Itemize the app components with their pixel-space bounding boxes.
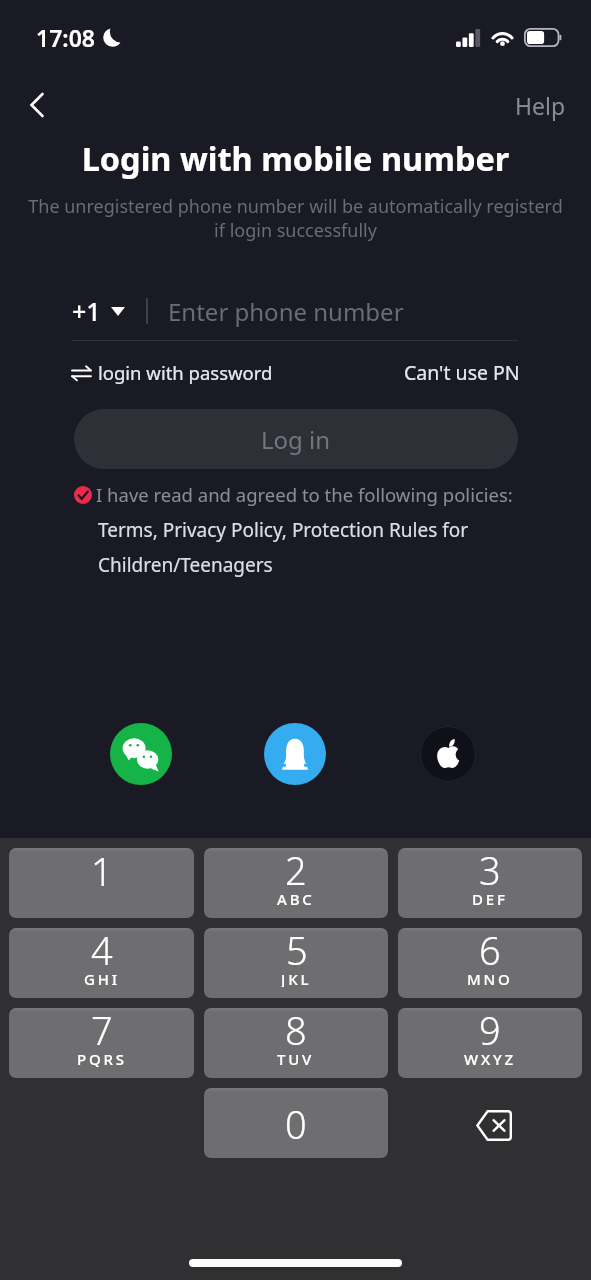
button[interactable]: +1 [72,294,125,328]
staticText: 3 [479,848,501,896]
button[interactable]: 1 [9,848,194,918]
staticText: 5 [286,928,308,976]
button[interactable]: Agree to policies checkbox [74,486,92,504]
button[interactable]: 0 [204,1088,388,1158]
staticText: MNO [467,969,513,987]
staticText: 17:08 [36,22,95,53]
staticText: 6 [479,928,501,976]
button[interactable]: Terms, Privacy Policy, Protection Rules … [98,517,491,578]
button[interactable]: login with password [72,360,273,385]
button[interactable]: 9 [398,1008,582,1078]
staticText: login with password [98,360,273,385]
staticText: JKL [281,969,312,987]
staticText: I have read and agreed to the following … [96,482,513,507]
button[interactable]: Log in [74,409,518,469]
staticText: +1 [72,294,101,328]
staticText: Terms, Privacy Policy, Protection Rules … [98,517,491,578]
staticText: 7 [91,1008,113,1056]
staticText: 4 [91,928,113,976]
staticText: The unregistered phone number will be au… [10,194,581,242]
button[interactable]: 6 [398,928,582,998]
staticText: Enter phone number [168,295,404,328]
staticText: ABC [277,889,315,907]
staticText: PQRS [77,1049,127,1067]
staticText: Help [515,90,566,121]
button[interactable]: 3 [398,848,582,918]
staticText: DEF [472,889,508,907]
staticText: 9 [479,1008,501,1056]
staticText: Log in [261,423,331,456]
staticText: GHI [84,969,120,987]
staticText: Login with mobile number [0,136,591,180]
staticText: Can't use PN [404,359,520,386]
button[interactable]: 5 [204,928,388,998]
button[interactable]: Help [493,80,591,131]
staticText: 1 [91,848,113,897]
button[interactable]: 7 [9,1008,194,1078]
button[interactable]: 2 [204,848,388,918]
staticText: 2 [285,848,307,896]
button[interactable]: 4 [9,928,194,998]
staticText: 0 [285,1098,307,1150]
button[interactable]: Login with QQ [264,723,326,785]
button[interactable]: Back [14,82,60,128]
button[interactable]: Can't use PN [404,359,520,386]
button[interactable]: 8 [204,1008,388,1078]
staticText: TUV [277,1049,315,1067]
button[interactable]: Login with WeChat [110,723,172,785]
staticText: 8 [285,1008,307,1056]
staticText: WXYZ [464,1049,516,1067]
button[interactable]: Delete [398,1088,582,1158]
button[interactable]: Login with Apple [420,726,476,782]
